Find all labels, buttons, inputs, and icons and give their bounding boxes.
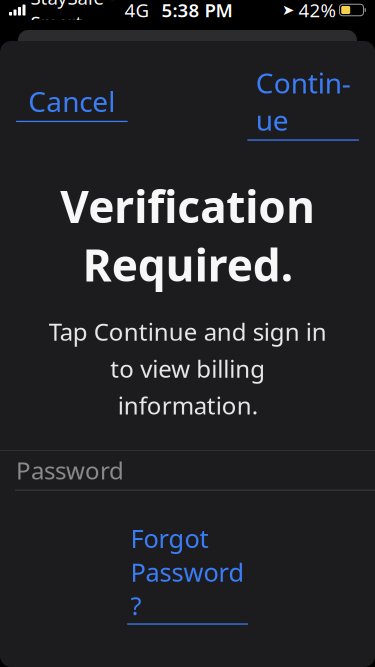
- staticText: 4G: [124, 0, 149, 22]
- button[interactable]: Cancel: [14, 77, 130, 128]
- staticText: ➤: [282, 2, 294, 18]
- button[interactable]: Forgot Password?: [125, 515, 250, 631]
- staticText: Cancel: [28, 83, 115, 120]
- staticText: 5:38 PM: [161, 0, 232, 22]
- staticText: 42%: [298, 0, 336, 22]
- staticText: Password: [16, 454, 124, 486]
- button[interactable]: Password: [0, 451, 375, 490]
- staticText: Tap Continue and sign in to view billing…: [48, 315, 326, 421]
- staticText: Continue: [256, 64, 351, 138]
- staticText: Forgot Password?: [130, 521, 244, 622]
- staticText: StaySafe - Smart: [30, 0, 115, 35]
- staticText: Verification Required.: [60, 177, 315, 294]
- button[interactable]: Continue: [245, 58, 361, 147]
